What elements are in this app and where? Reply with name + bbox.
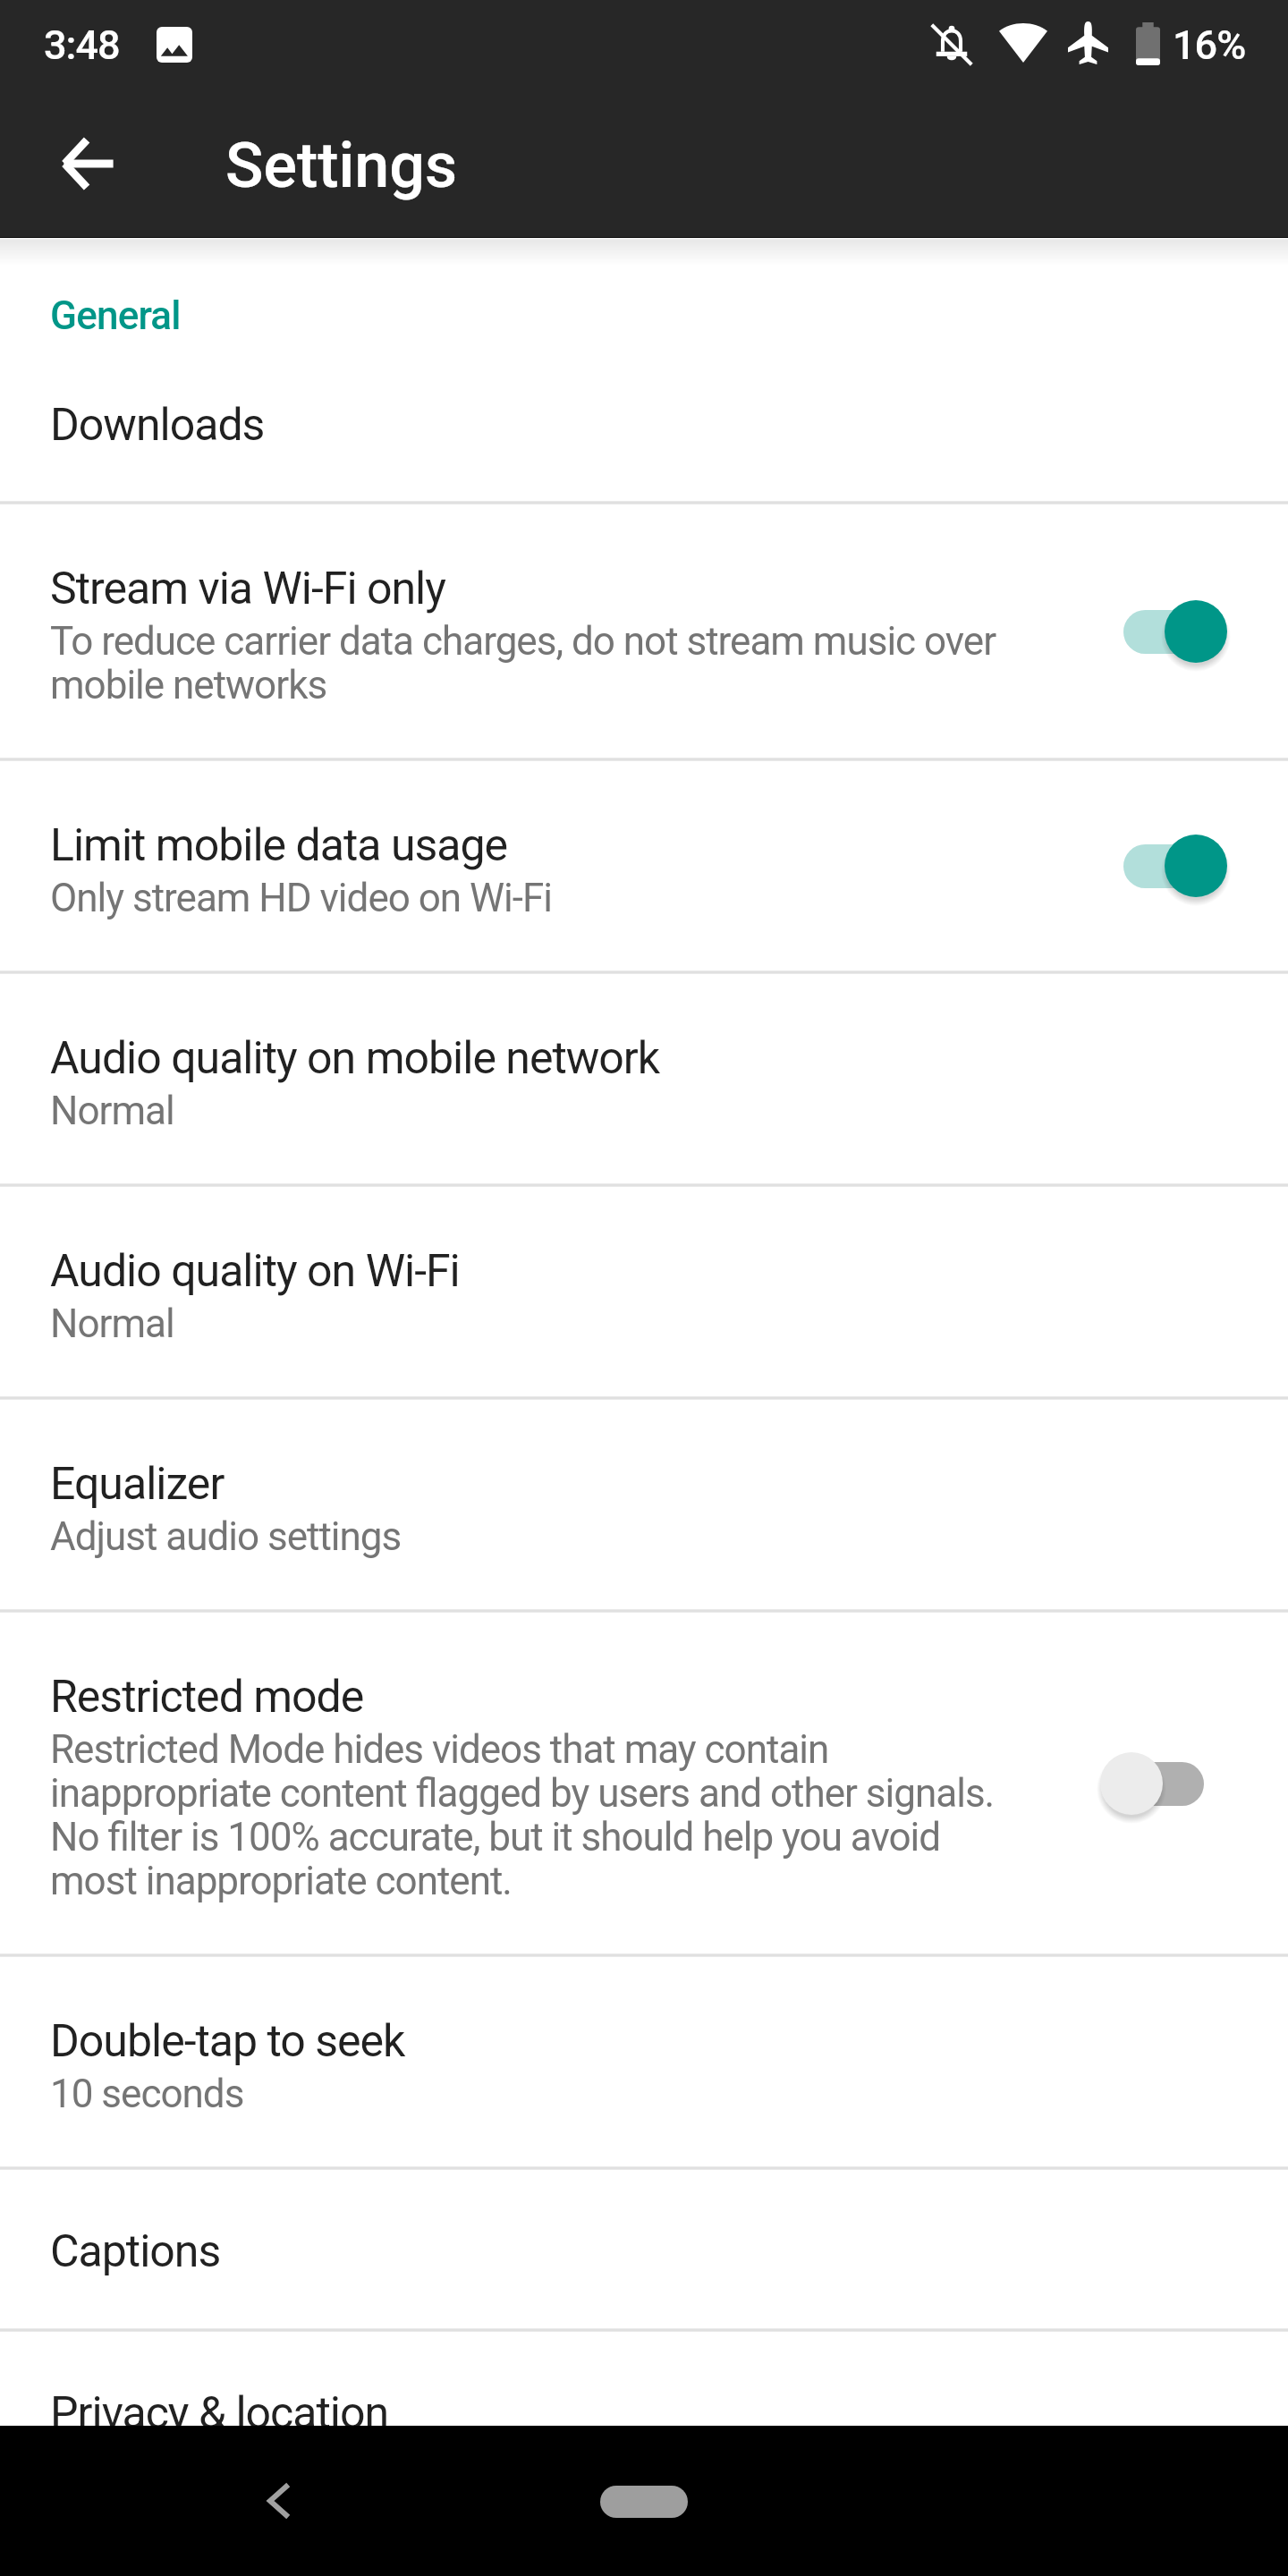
- button[interactable]: Captions: [0, 2170, 1288, 2328]
- button[interactable]: Back: [26, 101, 151, 226]
- staticText: Audio quality on mobile network: [50, 1032, 660, 1085]
- staticText: Adjust audio settings: [50, 1513, 402, 1560]
- button[interactable]: Stream via Wi-Fi only: [0, 504, 1288, 758]
- button[interactable]: Limit mobile data usage: [0, 761, 1288, 970]
- button[interactable]: On: [1100, 835, 1227, 897]
- button[interactable]: Audio quality on Wi-Fi: [0, 1187, 1288, 1396]
- button[interactable]: On: [1100, 600, 1227, 663]
- button[interactable]: Downloads: [0, 394, 1288, 501]
- staticText: Restricted mode: [50, 1671, 364, 1724]
- staticText: 3:48: [44, 21, 120, 69]
- staticText: Only stream HD video on Wi-Fi: [50, 875, 552, 921]
- button[interactable]: Back: [225, 2447, 332, 2555]
- button[interactable]: Home: [600, 2486, 688, 2518]
- staticText: Privacy & location: [50, 2387, 389, 2426]
- staticText: Limit mobile data usage: [50, 819, 508, 872]
- staticText: Downloads: [50, 399, 265, 452]
- button[interactable]: Restricted mode: [0, 1613, 1288, 1953]
- staticText: Settings: [225, 129, 458, 202]
- staticText: 16%: [1173, 21, 1246, 69]
- staticText: Audio quality on Wi-Fi: [50, 1245, 460, 1298]
- button[interactable]: Off: [1100, 1752, 1227, 1815]
- button[interactable]: Audio quality on mobile network: [0, 974, 1288, 1183]
- staticText: Captions: [50, 2225, 221, 2278]
- button[interactable]: Privacy & location: [0, 2332, 1288, 2426]
- staticText: 10 seconds: [50, 2071, 244, 2117]
- staticText: Equalizer: [50, 1458, 225, 1511]
- button[interactable]: Equalizer: [0, 1400, 1288, 1609]
- staticText: Restricted Mode hides videos that may co…: [50, 1726, 1016, 1904]
- staticText: Stream via Wi-Fi only: [50, 563, 445, 615]
- staticText: To reduce carrier data charges, do not s…: [50, 618, 1016, 708]
- staticText: Normal: [50, 1301, 174, 1347]
- staticText: Normal: [50, 1088, 174, 1134]
- staticText: Double-tap to seek: [50, 2015, 405, 2068]
- staticText: General: [50, 292, 181, 339]
- button[interactable]: Double-tap to seek: [0, 1957, 1288, 2166]
